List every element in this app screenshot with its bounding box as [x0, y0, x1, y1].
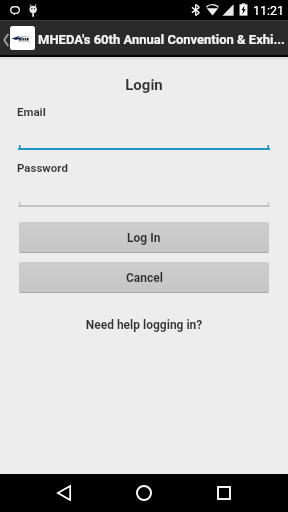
staticText: Password: [17, 161, 68, 174]
button[interactable]: Cancel: [19, 262, 269, 293]
button[interactable]: Navigate up: [0, 22, 11, 57]
button[interactable]: Need help logging in?: [0, 318, 288, 332]
staticText: MHEDA's 60th Annual Convention & Exhi...: [38, 32, 285, 47]
staticText: Login: [0, 76, 288, 94]
button[interactable]: Home: [120, 474, 168, 512]
button[interactable]: Recent apps: [200, 474, 248, 512]
button[interactable]: Log In: [19, 222, 269, 253]
staticText: Cancel: [126, 271, 163, 285]
staticText: 11:21: [253, 3, 285, 18]
button[interactable]: Back: [40, 474, 88, 512]
staticText: Log In: [127, 231, 161, 245]
staticText: Email: [17, 105, 46, 118]
